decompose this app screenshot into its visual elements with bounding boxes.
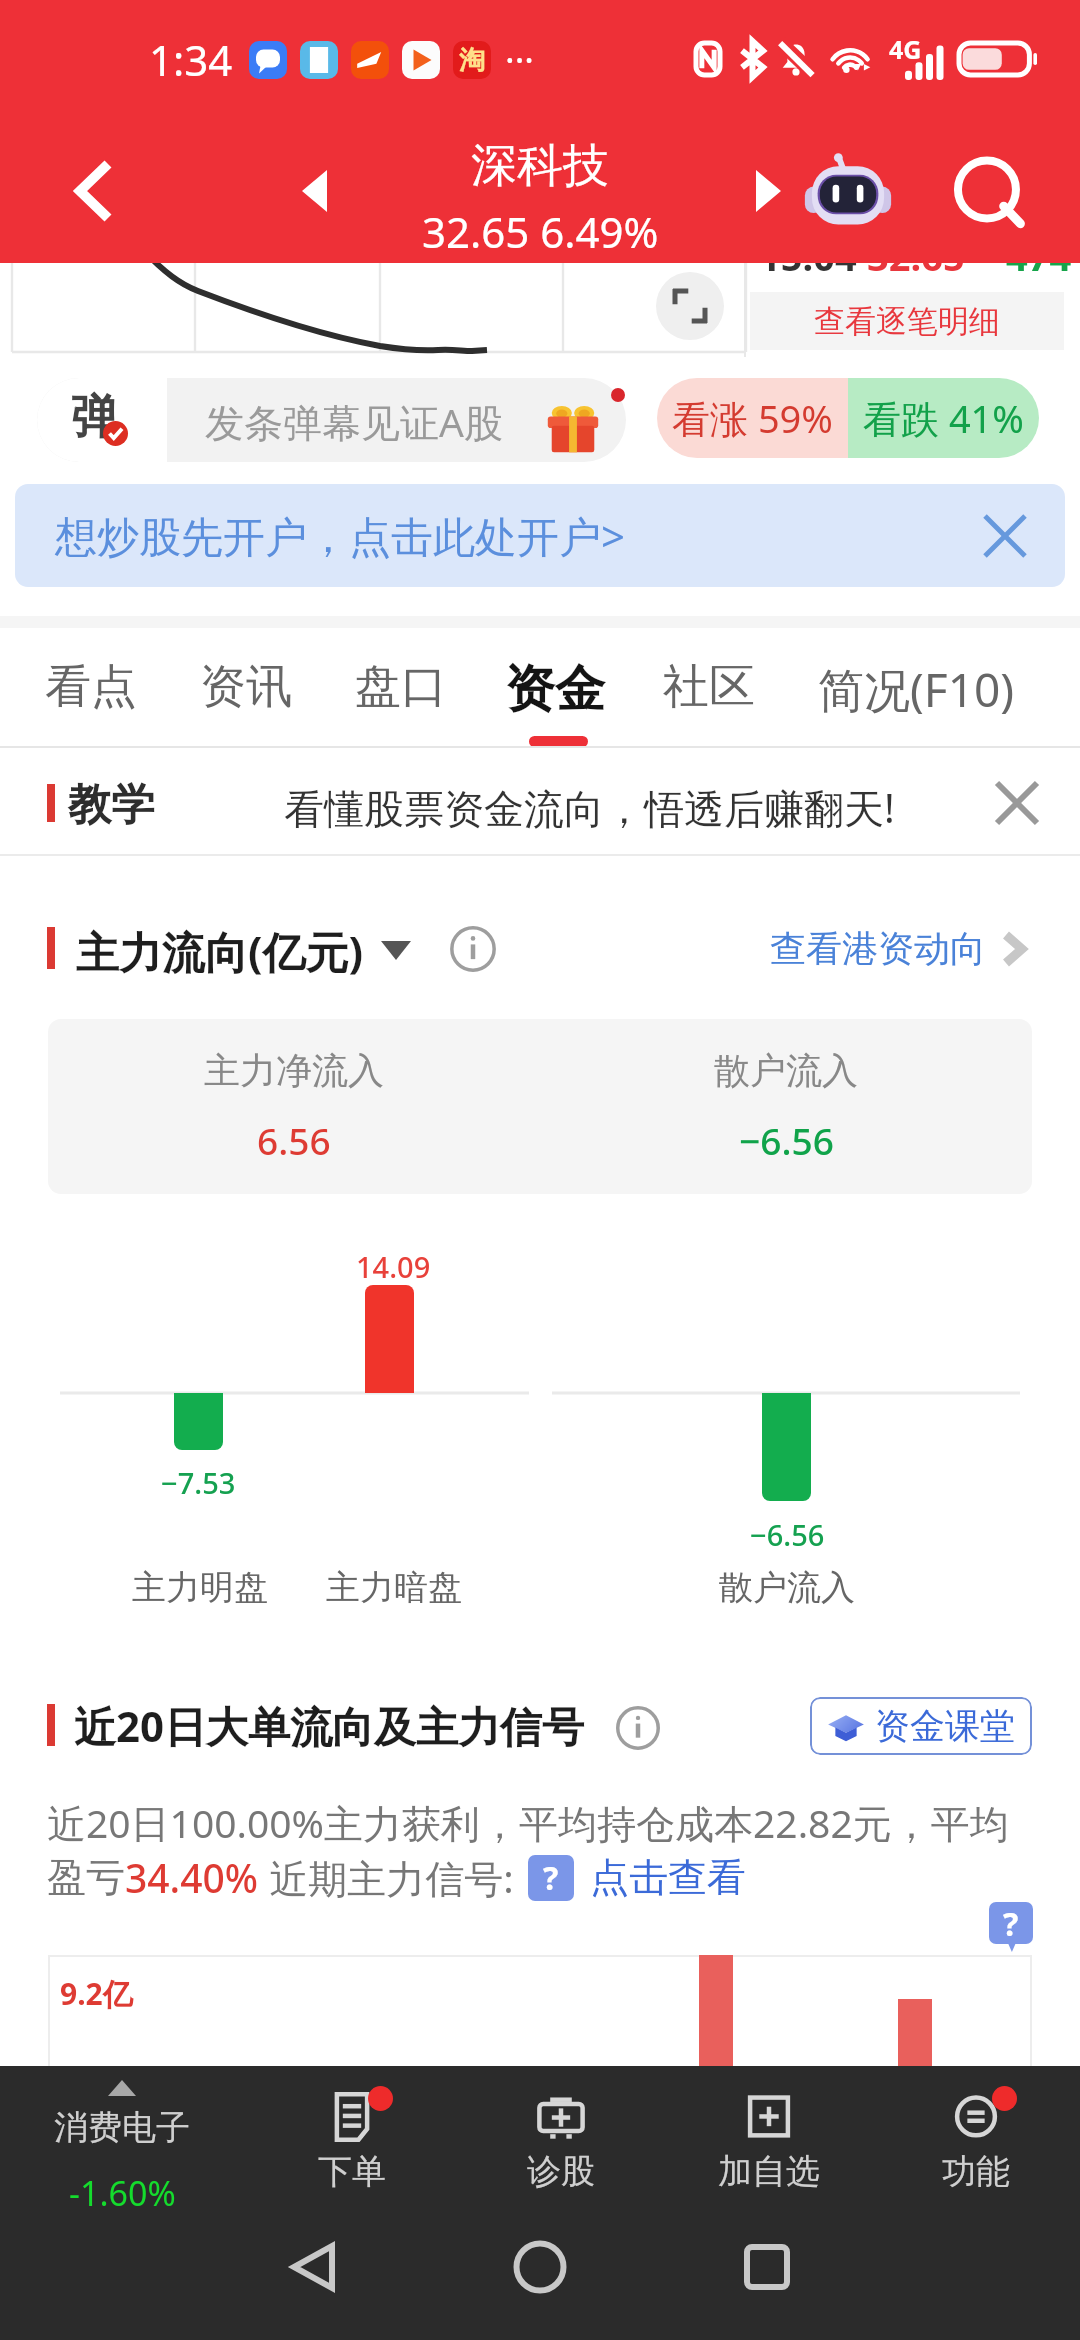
staticText: 功能 [942,2150,1010,2193]
button[interactable]: 想炒股先开户，点击此处开户> [15,484,1065,587]
staticText: 9.2亿 [60,1973,133,2014]
staticText: 诊股 [527,2150,595,2193]
staticText: 近20日大单流向及主力信号 [74,1697,585,1754]
button[interactable]: 下单 [244,2066,460,2194]
button[interactable]: 看点 [45,658,137,716]
staticText: -1.60% [69,2170,176,2216]
staticText: 发条弹幕见证A股 [205,395,503,448]
button[interactable]: Help [989,1902,1033,1944]
button[interactable]: 社区 [663,658,755,716]
staticText: 盈亏 [47,1853,125,1902]
staticText: 看点 [45,658,137,716]
staticText: −6.56 [739,1115,834,1165]
staticText: 近20日100.00%主力获利，平均持仓成本22.82元，平均 [47,1796,1009,1849]
button[interactable]: Recent apps [712,2212,822,2322]
staticText: 主力暗盘 [326,1566,462,1609]
staticText: 想炒股先开户，点击此处开户> [55,507,626,564]
staticText: 主力明盘 [132,1566,268,1609]
staticText: 看涨 59% [672,392,833,444]
staticText: 深科技 [471,137,609,195]
staticText: 教学 [68,778,154,832]
button[interactable]: 诊股 [453,2066,669,2194]
button[interactable]: Previous stock [268,145,360,237]
staticText: ··· [505,35,534,84]
button[interactable]: 看涨 59% [657,378,1039,458]
button[interactable]: Next stock [722,145,814,237]
staticText: 看跌 41% [863,392,1024,444]
staticText: 6.56 [257,1115,331,1165]
staticText: 散户流入 [714,1048,858,1093]
button[interactable]: 简况(F10) [818,658,1015,721]
staticText: 社区 [663,658,755,716]
staticText: 查看港资动向 [770,926,986,971]
button[interactable]: 资金课堂 [810,1697,1032,1755]
staticText: 看懂股票资金流向，悟透后赚翻天! [284,780,895,835]
staticText: −7.53 [161,1463,236,1502]
button[interactable]: 教学 [0,750,1080,856]
staticText: 资讯 [200,658,292,716]
button[interactable]: 点击查看 [590,1853,746,1902]
button[interactable]: 盘口 [355,658,447,716]
button[interactable]: Back [258,2212,368,2322]
staticText: 32.65 [867,230,965,282]
staticText: 近期主力信号: [259,1851,514,1904]
other: Info [616,1706,660,1750]
button[interactable]: Close [971,502,1039,570]
button[interactable]: Fullscreen chart [656,272,724,340]
staticText: 1:34 [149,31,233,88]
staticText: 32.65 6.49% [422,203,659,260]
button[interactable]: AI assistant [800,143,896,239]
button[interactable]: 消费电子 [14,2066,230,2194]
staticText: 加自选 [718,2150,820,2193]
button[interactable]: 功能 [868,2066,1080,2194]
staticText: 消费电子 [54,2106,190,2149]
staticText: 查看逐笔明细 [814,302,1000,341]
button[interactable]: 资讯 [200,658,292,716]
button[interactable]: Back [48,145,140,237]
button[interactable]: 弹 [37,378,626,462]
staticText: 散户流入 [719,1566,855,1609]
staticText: 盘口 [355,658,447,716]
staticText: ? [1003,1902,1019,1944]
staticText: 34.40% [125,1851,259,1904]
staticText: 资金课堂 [875,1704,1015,1748]
button[interactable]: Search [940,141,1040,241]
button[interactable]: Home [485,2212,595,2322]
button[interactable]: 资金 [505,658,605,721]
staticText: 资金 [505,658,605,721]
staticText: 474 [1006,230,1072,282]
staticText: 下单 [318,2150,386,2193]
button[interactable]: 加自选 [661,2066,877,2194]
staticText: 4G [889,32,922,66]
staticText: 主力净流入 [204,1048,384,1093]
staticText: 淘 [459,44,485,77]
staticText: ? [543,1856,559,1900]
staticText: 14.09 [356,1247,431,1286]
staticText: 主力流向(亿元) [76,922,364,981]
other: Info [450,926,496,972]
staticText: −6.56 [750,1515,825,1554]
staticText: 弹 [71,388,118,447]
button[interactable]: Close [982,768,1052,838]
staticText: 15:04 [759,230,857,282]
button[interactable]: 查看港资动向 [770,926,1026,971]
button[interactable]: 查看逐笔明细 [750,292,1064,350]
staticText: 简况(F10) [818,658,1015,721]
